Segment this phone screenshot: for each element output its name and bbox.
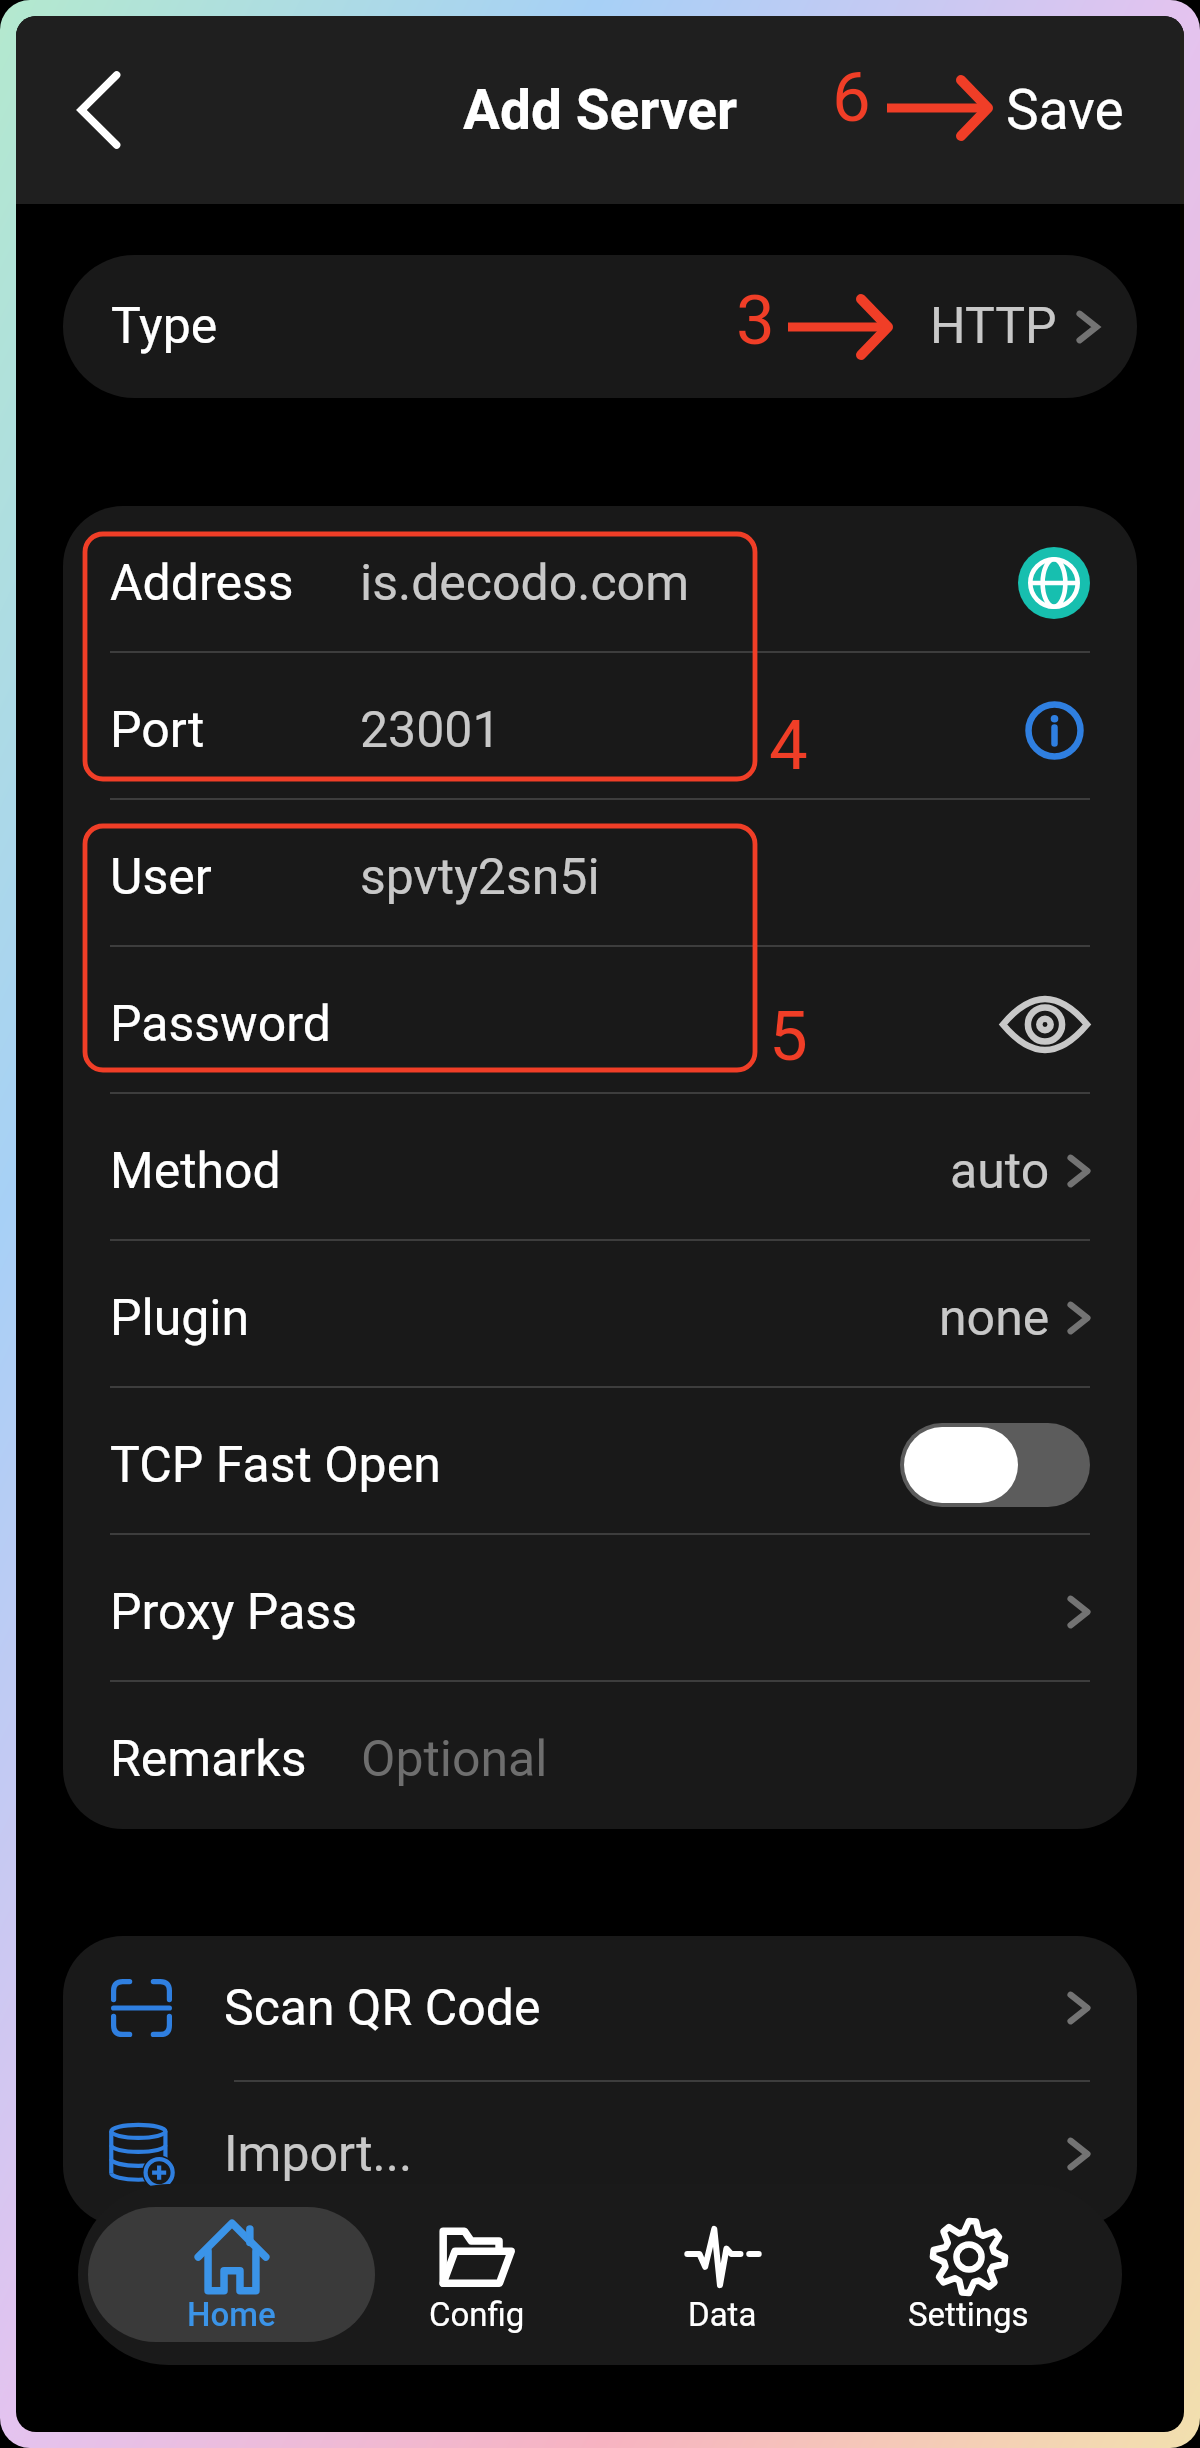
button[interactable]: Plugin bbox=[63, 1241, 1137, 1388]
staticText: Optional bbox=[361, 1730, 548, 1789]
staticText: Add Server bbox=[463, 78, 738, 142]
staticText: is.decodo.com bbox=[360, 554, 689, 613]
staticText: Data bbox=[688, 2295, 757, 2334]
staticText: 4 bbox=[769, 705, 808, 786]
staticText: auto bbox=[950, 1142, 1050, 1201]
staticText: Port bbox=[110, 701, 205, 760]
button[interactable]: TCP Fast Open toggle bbox=[900, 1423, 1090, 1507]
staticText: Remarks bbox=[110, 1730, 307, 1789]
button[interactable]: TCP Fast Open bbox=[63, 1388, 1137, 1535]
button[interactable]: Proxy Pass bbox=[63, 1535, 1137, 1682]
button[interactable]: Save bbox=[1006, 78, 1124, 142]
button[interactable]: User bbox=[63, 800, 1137, 947]
button[interactable]: Port bbox=[63, 653, 1137, 800]
staticText: Config bbox=[429, 2295, 525, 2334]
button[interactable]: Settings bbox=[825, 2184, 1112, 2365]
staticText: 23001 bbox=[360, 701, 501, 760]
staticText: Import... bbox=[224, 2125, 413, 2184]
button[interactable]: Address bbox=[63, 506, 1137, 653]
staticText: spvty2sn5i bbox=[360, 848, 600, 907]
staticText: Proxy Pass bbox=[110, 1583, 357, 1642]
button[interactable]: Info bbox=[1018, 694, 1090, 766]
staticText: none bbox=[939, 1289, 1050, 1348]
staticText: User bbox=[110, 848, 212, 907]
staticText: Scan QR Code bbox=[224, 1979, 541, 2038]
staticText: TCP Fast Open bbox=[110, 1436, 441, 1495]
staticText: Method bbox=[110, 1142, 281, 1201]
button[interactable]: Open address bbox=[1018, 547, 1090, 619]
staticText: Settings bbox=[908, 2295, 1029, 2334]
staticText: HTTP bbox=[930, 297, 1057, 356]
button[interactable]: Password bbox=[63, 947, 1137, 1094]
staticText: 5 bbox=[769, 996, 808, 1077]
button[interactable]: Scan QR Code bbox=[63, 1936, 1137, 2080]
button[interactable]: Config bbox=[333, 2184, 620, 2365]
button[interactable]: Type bbox=[63, 255, 1137, 398]
button[interactable]: Back bbox=[54, 65, 144, 155]
button[interactable]: Remarks bbox=[63, 1682, 1137, 1829]
staticText: 3 bbox=[736, 280, 775, 361]
staticText: Password bbox=[110, 995, 331, 1054]
button[interactable]: Data bbox=[579, 2184, 866, 2365]
staticText: Type bbox=[111, 297, 218, 356]
button[interactable]: Method bbox=[63, 1094, 1137, 1241]
staticText: Address bbox=[110, 554, 294, 613]
button[interactable]: Home bbox=[88, 2184, 375, 2365]
button[interactable]: Import... bbox=[63, 2082, 1137, 2226]
staticText: 6 bbox=[832, 57, 871, 138]
staticText: Home bbox=[187, 2295, 276, 2334]
staticText: Plugin bbox=[110, 1289, 250, 1348]
button[interactable]: Show password bbox=[990, 986, 1090, 1062]
